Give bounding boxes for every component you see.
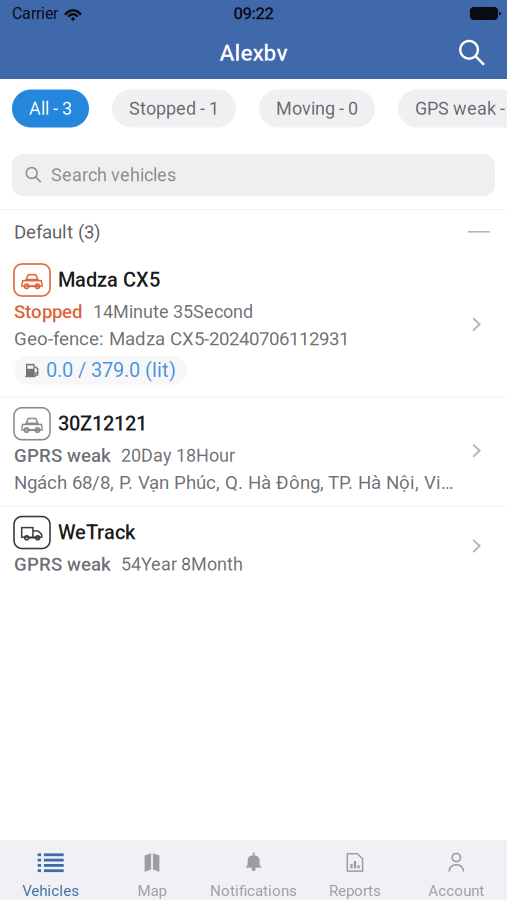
button[interactable]: Account (406, 840, 507, 900)
staticText: 54Year 8Month (121, 554, 243, 575)
button[interactable]: Stopped - 1 (112, 89, 236, 127)
staticText: Stopped (14, 301, 83, 323)
staticText: Default (3) (14, 221, 100, 243)
staticText: Map (138, 882, 167, 900)
button[interactable]: Collapse section (461, 217, 497, 247)
staticText: 20Day 18Hour (121, 445, 235, 466)
staticText: Stopped - 1 (129, 98, 219, 119)
button[interactable]: All - 3 (12, 89, 89, 127)
staticText: 0.0 / 379.0 (lit) (46, 358, 176, 382)
staticText: Reports (329, 882, 381, 900)
staticText: 30Z12121 (58, 412, 147, 435)
staticText: Account (428, 882, 484, 900)
staticText: Notifications (210, 882, 297, 900)
button[interactable]: Madza CX5 (0, 254, 507, 397)
staticText: Search vehicles (51, 164, 176, 186)
staticText: GPRS weak (14, 445, 111, 467)
staticText: Carrier (12, 4, 58, 23)
staticText: WeTrack (58, 521, 135, 544)
button[interactable]: WeTrack (0, 506, 507, 587)
staticText: Vehicles (22, 882, 79, 900)
button[interactable]: Notifications (203, 840, 304, 900)
staticText: Geo-fence: Madza CX5-20240706112931 (14, 328, 349, 350)
button[interactable]: 30Z12121 (0, 398, 507, 506)
staticText: 09:22 (233, 4, 273, 23)
staticText: GPRS weak (14, 553, 111, 575)
staticText: All - 3 (29, 98, 72, 119)
button[interactable]: GPS weak - 2 (398, 89, 508, 127)
staticText: Ngách 68/8, P. Vạn Phúc, Q. Hà Đông, TP.… (14, 472, 459, 493)
staticText: Moving - 0 (276, 98, 358, 119)
staticText: Madza CX5 (58, 268, 160, 292)
staticText: GPS weak - 2 (415, 98, 508, 119)
staticText: Alexbv (219, 40, 287, 66)
button[interactable]: Map (101, 840, 203, 900)
button[interactable]: Moving - 0 (259, 89, 375, 127)
staticText: 14Minute 35Second (93, 301, 253, 322)
button[interactable]: Search vehicles (0, 154, 507, 196)
button[interactable]: Search (450, 31, 494, 75)
button[interactable]: Reports (304, 840, 406, 900)
button[interactable]: Vehicles (0, 840, 101, 900)
